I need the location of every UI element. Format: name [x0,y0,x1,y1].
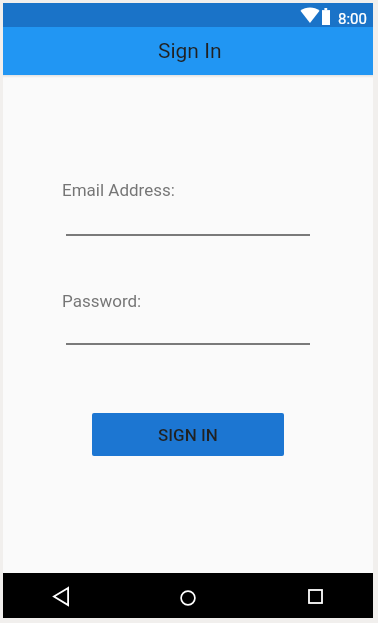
button[interactable] [66,313,310,345]
button[interactable]: SIGN IN [92,413,284,456]
staticText: SIGN IN [158,425,218,445]
staticText: Email Address: [62,180,175,200]
staticText: Sign In [158,39,222,64]
button[interactable] [168,573,210,618]
staticText: Password: [62,291,142,311]
button[interactable] [294,573,336,618]
button[interactable] [42,573,83,618]
button[interactable] [66,204,310,236]
staticText: 8:00 [338,10,367,28]
